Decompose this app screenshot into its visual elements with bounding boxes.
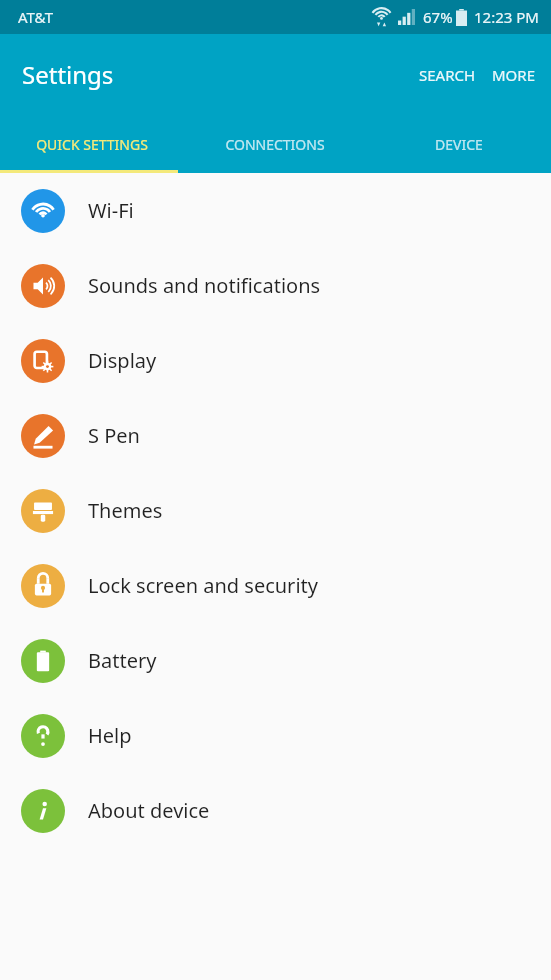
staticText: DEVICE [435,135,483,154]
staticText: AT&T [18,7,53,27]
staticText: Battery [88,647,157,674]
button[interactable]: Help [0,698,551,773]
staticText: SEARCH [419,65,476,85]
staticText: S Pen [88,422,140,449]
button[interactable]: Battery [0,623,551,698]
staticText: Wi-Fi [88,197,134,224]
button[interactable]: Display [0,323,551,398]
button[interactable]: Sounds and notifications [0,248,551,323]
staticText: Settings [22,58,114,91]
staticText: Lock screen and security [88,572,318,599]
button[interactable]: QUICK SETTINGS [0,115,183,173]
staticText: MORE [492,65,535,85]
button[interactable]: S Pen [0,398,551,473]
staticText: Themes [88,497,163,524]
staticText: 12:23 PM [474,7,539,27]
staticText: QUICK SETTINGS [36,135,148,154]
staticText: Display [88,347,157,374]
staticText: Help [88,722,132,749]
button[interactable]: SEARCH [411,55,484,95]
staticText: 67% [423,7,453,27]
button[interactable]: CONNECTIONS [183,115,367,173]
button[interactable]: About device [0,773,551,848]
staticText: CONNECTIONS [225,135,325,154]
button[interactable]: Lock screen and security [0,548,551,623]
button[interactable]: Themes [0,473,551,548]
staticText: About device [88,797,210,824]
button[interactable]: Wi-Fi [0,173,551,248]
staticText: Sounds and notifications [88,272,321,299]
button[interactable]: MORE [484,55,551,95]
button[interactable]: DEVICE [367,115,551,173]
